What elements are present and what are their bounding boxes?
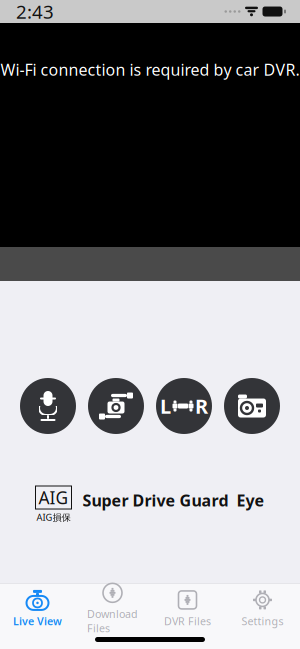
- staticText: Live View: [13, 614, 62, 628]
- staticText: Settings: [241, 614, 283, 628]
- button[interactable]: Download Files: [75, 588, 150, 628]
- staticText: L: [160, 393, 171, 419]
- button[interactable]: Mirror left and right: [156, 378, 212, 434]
- staticText: AIG: [38, 486, 68, 509]
- button[interactable]: Live View: [0, 588, 75, 628]
- button[interactable]: Take snapshot: [224, 378, 280, 434]
- staticText: Super Drive Guard Eye: [82, 490, 264, 511]
- button[interactable]: Settings: [225, 588, 300, 628]
- staticText: DVR Files: [164, 614, 211, 628]
- staticText: AIG損保: [36, 511, 70, 523]
- staticText: R: [195, 393, 208, 419]
- staticText: 2:43: [16, 0, 54, 24]
- staticText: Download Files: [87, 607, 138, 635]
- button[interactable]: Switch camera view: [88, 378, 144, 434]
- staticText: Wi-Fi connection is required by car DVR.: [0, 59, 299, 80]
- button[interactable]: DVR Files: [150, 588, 225, 628]
- button[interactable]: Mute microphone: [20, 378, 76, 434]
